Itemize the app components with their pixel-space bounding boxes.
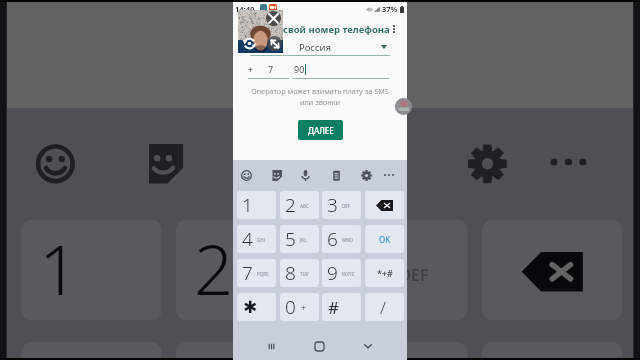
button[interactable]: clipboard [338, 122, 417, 202]
button[interactable]: emoji [14, 122, 93, 202]
button[interactable]: 4 [21, 342, 162, 360]
button[interactable]: 8 [280, 259, 319, 287]
staticText: 37% [382, 4, 398, 14]
button[interactable]: Home [307, 333, 331, 359]
staticText: TUV [300, 271, 309, 277]
staticText: MNO [342, 237, 354, 243]
staticText: 1 [242, 192, 253, 218]
button[interactable]: sticker [122, 122, 201, 202]
button[interactable]: mic [226, 122, 306, 202]
button[interactable]: / [365, 293, 404, 321]
button[interactable]: *+# [365, 259, 404, 287]
button[interactable]: 1 [21, 220, 162, 320]
button[interactable]: 9 [322, 259, 361, 287]
staticText: Россия [299, 41, 331, 54]
button[interactable]: 0 [280, 293, 319, 321]
staticText: OK [379, 234, 391, 245]
button[interactable]: 2 [280, 191, 319, 219]
staticText: 7 [268, 63, 274, 75]
staticText: 4 [242, 226, 253, 252]
button[interactable]: OK [365, 225, 404, 253]
staticText: ABC [300, 203, 309, 209]
button[interactable]: # [322, 293, 361, 321]
button[interactable]: settings [446, 122, 525, 202]
button[interactable]: 6 [322, 225, 361, 253]
staticText: свой номер телефона [283, 23, 390, 36]
button[interactable]: 5 [280, 225, 319, 253]
staticText: *+# [377, 267, 393, 279]
button[interactable]: 3 [327, 220, 468, 320]
button[interactable]: ДАЛЕЕ [298, 120, 343, 140]
staticText: # [328, 296, 339, 319]
staticText: PQRS [257, 271, 269, 277]
button[interactable] [482, 220, 622, 320]
staticText: 9 [327, 260, 338, 286]
button[interactable]: more [378, 164, 400, 186]
button[interactable]: Close video [266, 11, 281, 26]
button[interactable]: Hide keyboard [356, 333, 380, 359]
staticText: DEF [342, 203, 351, 209]
button[interactable]: OK [482, 342, 622, 360]
staticText: 3 [345, 223, 385, 317]
button[interactable]: mic [294, 164, 316, 186]
button[interactable]: 4 [237, 225, 276, 253]
button[interactable]: settings [355, 164, 377, 186]
button[interactable]: Switch camera [242, 36, 256, 50]
button[interactable]: Video call [238, 10, 283, 53]
staticText: 6 [345, 346, 385, 360]
staticText: 4 [39, 346, 79, 360]
button[interactable]: 2 [176, 220, 316, 320]
staticText: / [380, 296, 386, 319]
staticText: WXYZ [342, 271, 355, 277]
button[interactable] [365, 191, 404, 219]
staticText: ДАЛЕЕ [277, 0, 370, 22]
staticText: 14:40 [235, 4, 255, 14]
button[interactable]: clipboard [325, 164, 347, 186]
staticText: 6 [327, 226, 338, 252]
button[interactable]: 90 [294, 62, 389, 75]
staticText: Оператор может взимать плату за SMS или … [237, 86, 403, 108]
button[interactable]: + [248, 62, 289, 75]
button[interactable]: ✱ [237, 293, 276, 321]
button[interactable]: 3 [322, 191, 361, 219]
staticText: ABC [248, 263, 280, 284]
staticText: GHI [257, 237, 266, 243]
staticText: 2 [285, 192, 296, 218]
button[interactable]: 7 [237, 259, 276, 287]
staticText: ✱ [243, 297, 258, 317]
button[interactable]: More options [389, 23, 399, 35]
staticText: + [248, 63, 254, 75]
button[interactable]: sticker [265, 164, 287, 186]
staticText: 2 [194, 223, 234, 317]
staticText: 5 [285, 226, 296, 252]
button[interactable]: Expand video [267, 36, 282, 51]
staticText: 3 [327, 192, 338, 218]
button[interactable]: Floating widget [395, 98, 412, 115]
button[interactable]: 6 [327, 342, 468, 360]
button[interactable]: more [529, 122, 608, 202]
button[interactable]: Recent apps [259, 333, 283, 359]
staticText: ДАЛЕЕ [308, 125, 334, 136]
staticText: 90 [294, 63, 305, 75]
button[interactable]: ДАЛЕЕ [241, 0, 403, 36]
button[interactable]: emoji [235, 164, 257, 186]
button[interactable]: Россия [250, 43, 390, 56]
staticText: 7 [242, 260, 253, 286]
staticText: JKL [300, 237, 307, 243]
staticText: 0 [285, 294, 296, 320]
button[interactable]: 1 [237, 191, 276, 219]
button[interactable]: 5 [176, 342, 316, 360]
staticText: 1 [39, 223, 79, 317]
staticText: 8 [285, 260, 296, 286]
staticText: 5 [194, 346, 234, 360]
staticText: DEF [399, 263, 432, 284]
staticText: + [301, 301, 307, 313]
